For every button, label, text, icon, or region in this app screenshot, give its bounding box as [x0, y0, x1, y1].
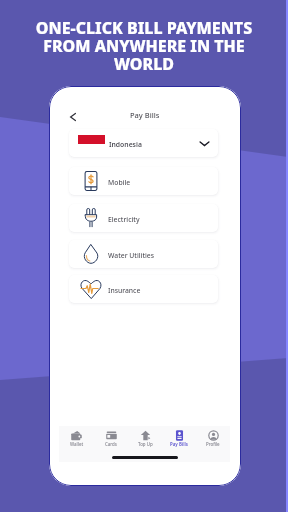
- staticText: Cards: [105, 441, 117, 447]
- staticText: Insurance: [108, 286, 141, 295]
- button[interactable]: Mobile: [69, 167, 218, 195]
- button[interactable]: Wallet: [59, 426, 94, 462]
- staticText: Indonesia: [109, 140, 142, 149]
- staticText: Top Up: [138, 441, 153, 447]
- button[interactable]: Indonesia: [69, 129, 218, 157]
- staticText: Electricity: [108, 215, 140, 224]
- button[interactable]: Back: [64, 108, 82, 126]
- staticText: Profile: [206, 441, 220, 447]
- button[interactable]: Pay Bills: [162, 426, 196, 462]
- button[interactable]: Insurance: [69, 275, 218, 303]
- staticText: Wallet: [70, 441, 84, 447]
- button[interactable]: Profile: [196, 426, 230, 462]
- staticText: Water Utilities: [108, 251, 155, 260]
- button[interactable]: Cards: [94, 426, 128, 462]
- button[interactable]: Water Utilities: [69, 240, 218, 268]
- staticText: Pay Bills: [130, 110, 160, 120]
- staticText: Mobile: [108, 178, 131, 187]
- button[interactable]: Top Up: [128, 426, 162, 462]
- button[interactable]: Electricity: [69, 204, 218, 232]
- staticText: ONE-CLICK BILL PAYMENTS FROM ANYWHERE IN…: [28, 17, 260, 75]
- staticText: Pay Bills: [170, 441, 189, 447]
